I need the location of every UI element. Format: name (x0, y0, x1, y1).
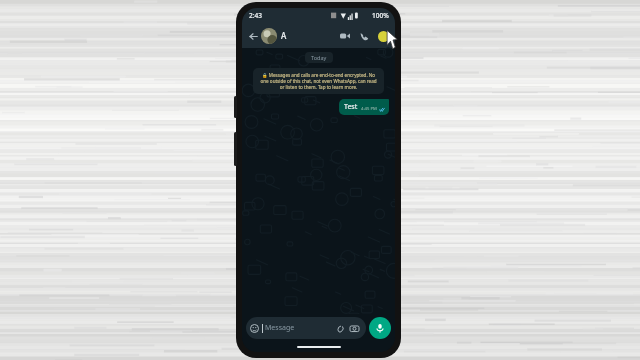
button[interactable]: Back (246, 29, 260, 43)
button[interactable]: Voice message (369, 317, 391, 339)
button[interactable]: More options (375, 28, 391, 44)
button[interactable]: Video call (337, 28, 353, 44)
staticText: 🔒 Messages and calls are end-to-end encr… (259, 72, 378, 90)
button[interactable]: Attach (335, 323, 346, 334)
button[interactable]: Profile photo (261, 28, 277, 44)
staticText: Test (344, 102, 358, 112)
button[interactable]: Test (339, 99, 389, 115)
staticText: Today (311, 54, 327, 61)
staticText: Message (265, 323, 295, 333)
button[interactable]: Voice call (356, 28, 372, 44)
button[interactable]: Camera (349, 323, 360, 334)
button[interactable]: Message (246, 317, 366, 339)
staticText: 2:43 (249, 11, 262, 20)
staticText: 4:45 PM (361, 106, 377, 112)
staticText: 100% (372, 11, 389, 20)
staticText: A (281, 30, 287, 41)
button[interactable]: 🔒 Messages and calls are end-to-end encr… (253, 68, 384, 94)
